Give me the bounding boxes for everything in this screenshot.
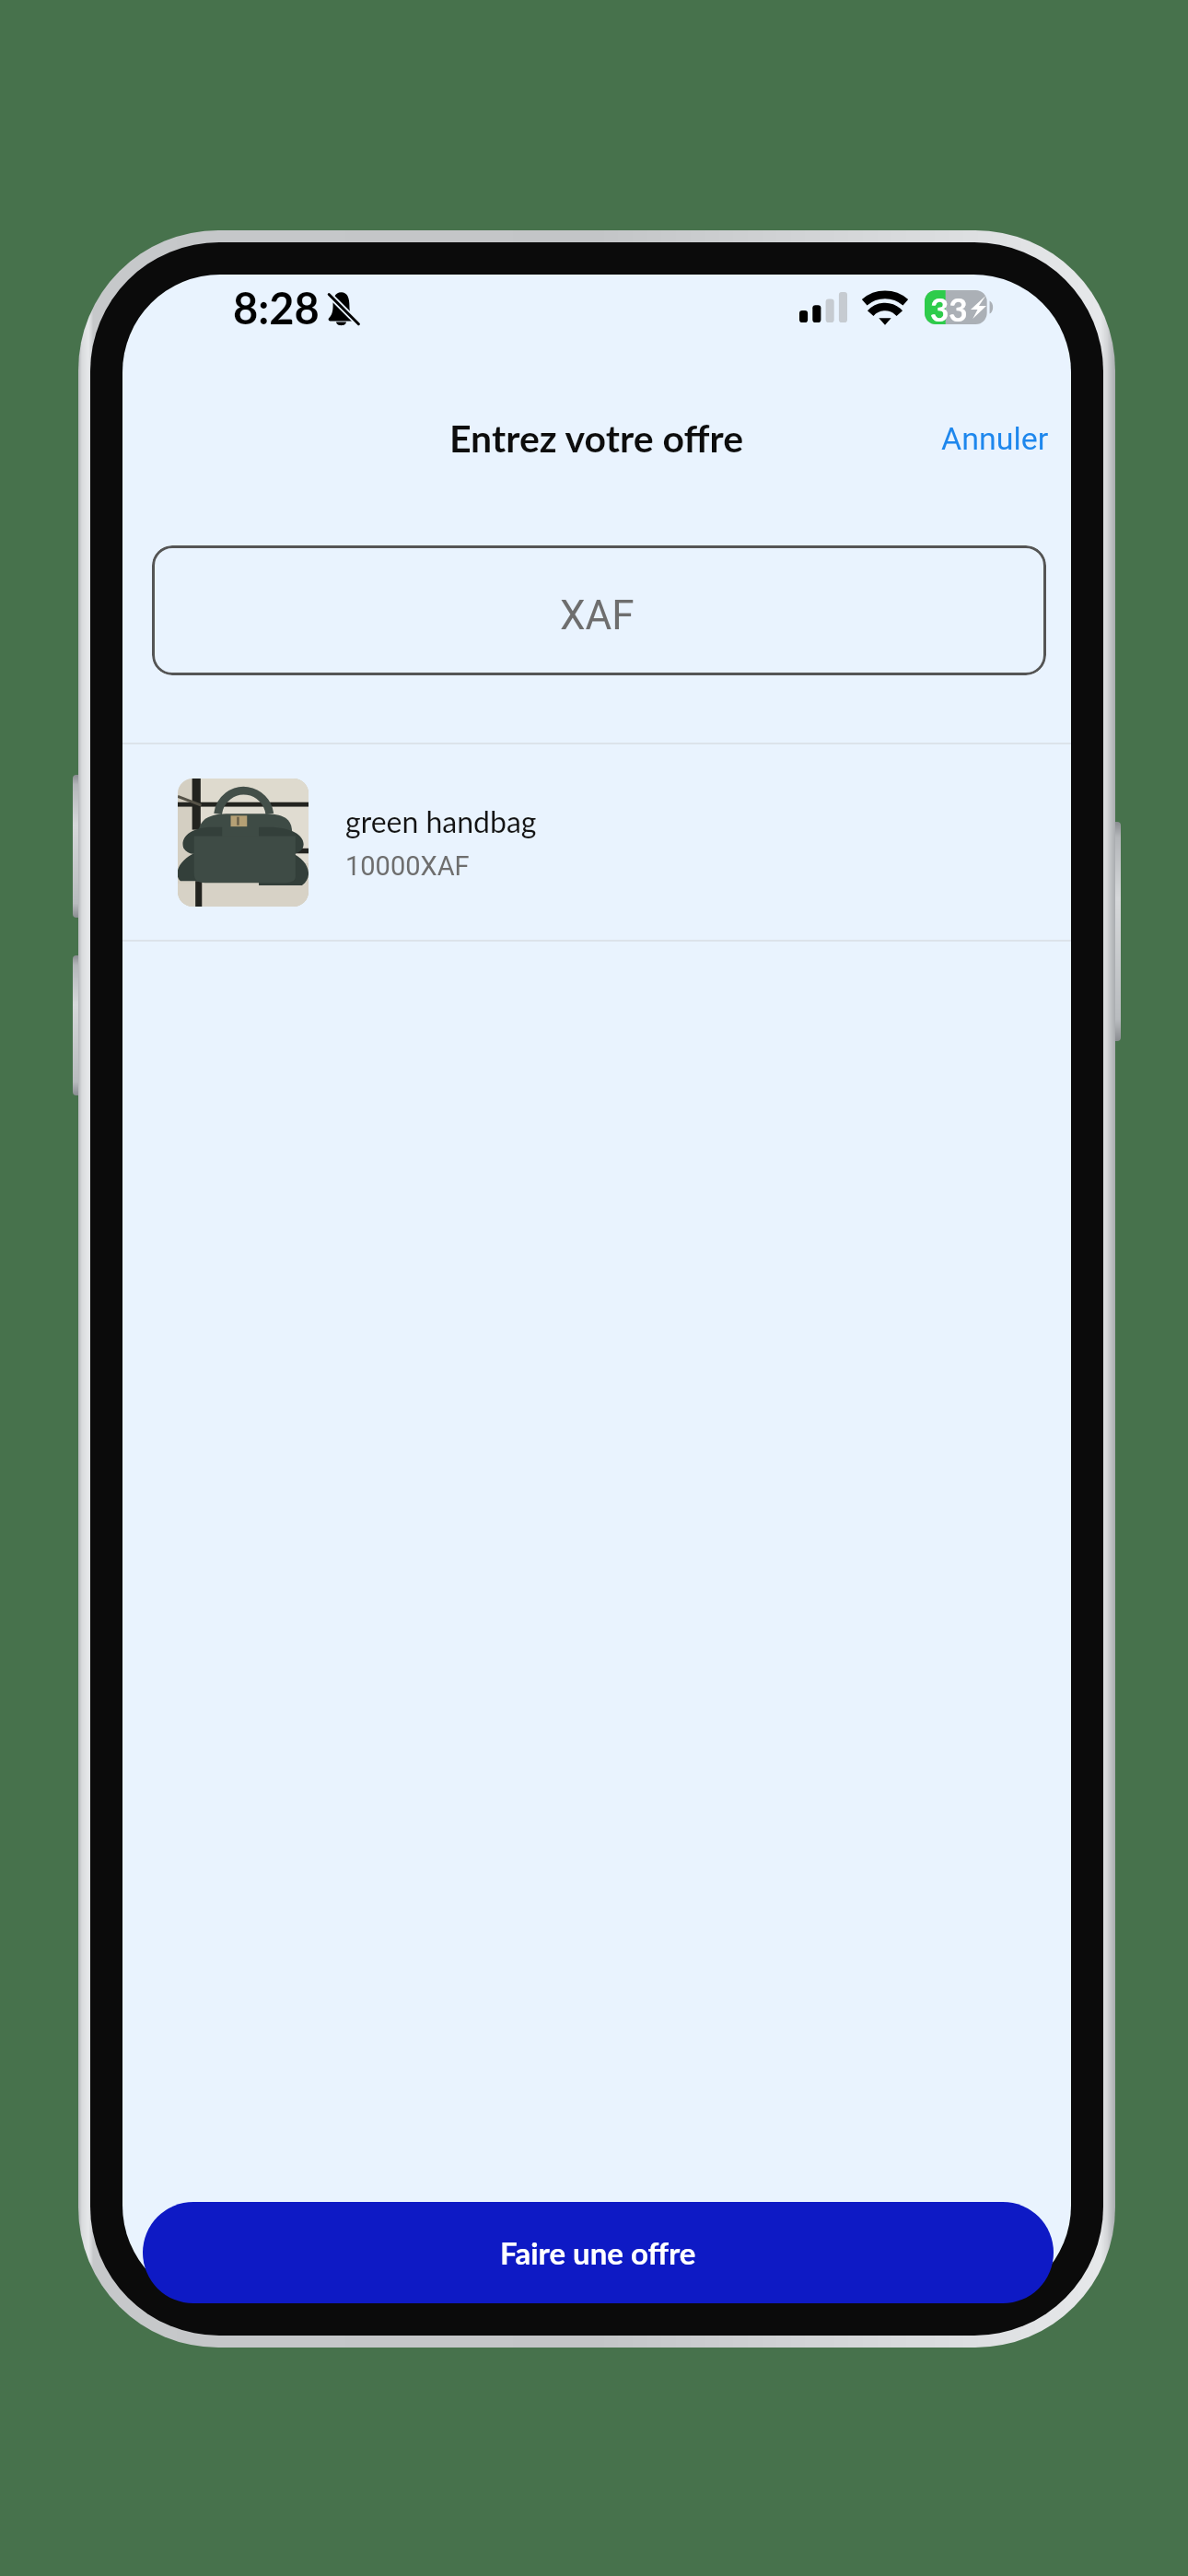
- button[interactable]: Annuler: [938, 415, 1052, 463]
- other: Battery 33 percent, charging: [925, 290, 992, 324]
- staticText: 33: [930, 289, 968, 323]
- staticText: 10000XAF: [345, 850, 470, 882]
- staticText: XAF: [560, 591, 635, 639]
- other: Silent mode: [325, 291, 357, 323]
- staticText: Entrez votre offre: [449, 416, 744, 461]
- staticText: 8:28: [233, 282, 320, 334]
- button[interactable]: XAF: [152, 545, 1046, 675]
- staticText: Faire une offre: [500, 2234, 696, 2271]
- staticText: Annuler: [941, 420, 1049, 457]
- other: Cellular signal: [799, 292, 847, 322]
- other: Wi-Fi: [864, 292, 906, 323]
- other: Photo of green handbag: [178, 779, 309, 907]
- button[interactable]: Photo of green handbag: [122, 744, 1071, 940]
- staticText: green handbag: [345, 803, 537, 838]
- button[interactable]: Faire une offre: [143, 2202, 1054, 2303]
